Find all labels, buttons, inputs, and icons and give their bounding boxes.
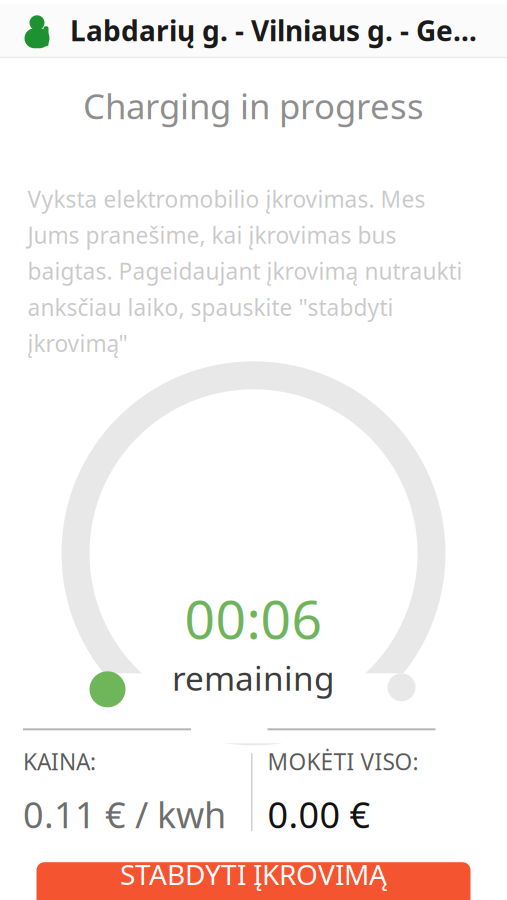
staticText: remaining — [172, 656, 335, 700]
staticText: 0.11 € / kwh — [23, 790, 226, 838]
staticText: STABDYTI ĮKROVIMĄ — [120, 855, 387, 893]
staticText: Labdarių g. - Vilniaus g. - Gedimino pr.… — [70, 12, 487, 49]
staticText: Vyksta elektromobilio įkrovimas. Mes Jum… — [27, 184, 462, 358]
staticText: MOKĖTI VISO: — [267, 746, 418, 776]
staticText: Charging in progress — [83, 83, 424, 129]
staticText: 0.00 € — [267, 790, 370, 838]
button[interactable]: STABDYTI ĮKROVIMĄ — [36, 862, 470, 900]
staticText: 00:06 — [184, 583, 322, 654]
staticText: KAINA: — [23, 746, 96, 776]
